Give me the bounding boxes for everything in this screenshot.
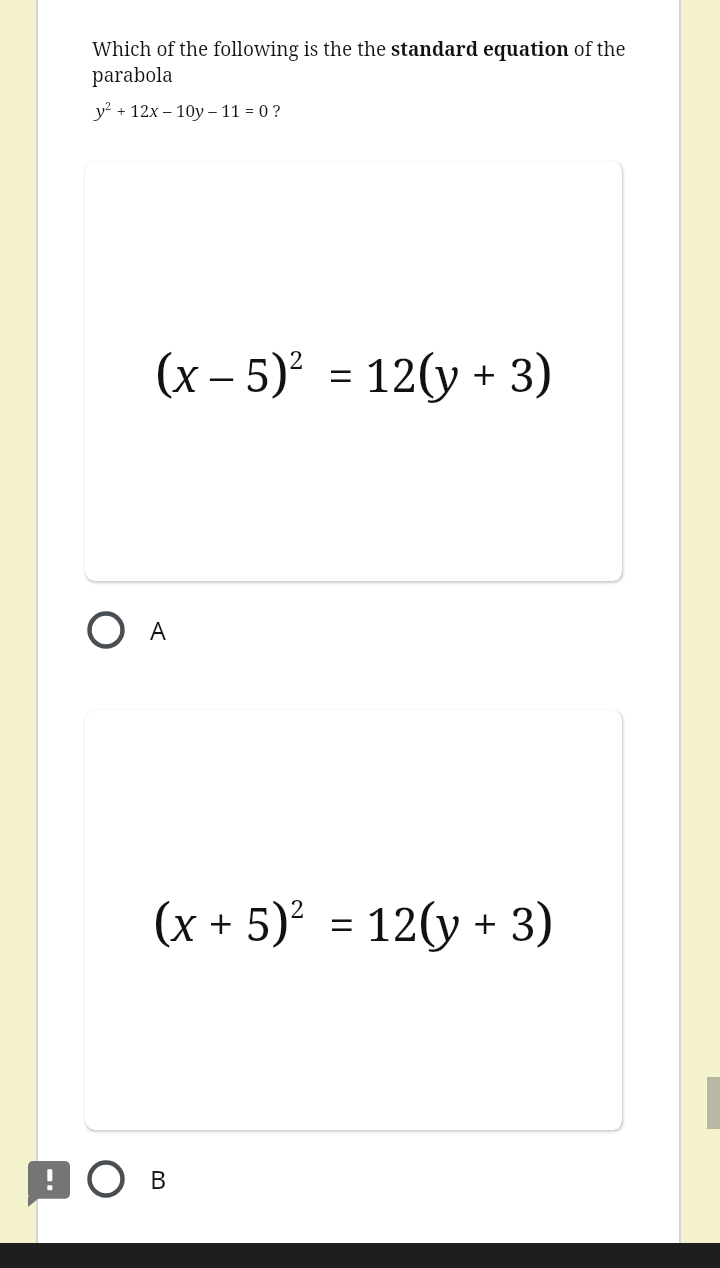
staticText: 2 xyxy=(105,98,112,113)
staticText: B xyxy=(150,1162,167,1196)
staticText: (x + 5) xyxy=(153,885,290,956)
button[interactable]: Select option A xyxy=(38,585,681,675)
button[interactable]: (x – 5) xyxy=(85,161,622,581)
other: Select option B xyxy=(87,1160,125,1198)
staticText: 2 xyxy=(289,341,304,376)
staticText: Which of the following is the the standa… xyxy=(92,36,661,88)
staticText: = 12(y + 3) xyxy=(305,885,554,956)
staticText: y xyxy=(96,99,105,122)
button[interactable]: Report a problem xyxy=(28,1161,70,1207)
button[interactable]: Select option B xyxy=(38,1134,681,1224)
other: Select option A xyxy=(87,611,125,649)
staticText: (x – 5) xyxy=(155,336,289,407)
staticText: 2 xyxy=(290,890,305,925)
staticText: + 12x – 10y – 11 = 0 ? xyxy=(112,99,281,122)
button[interactable]: (x + 5) xyxy=(85,710,622,1130)
staticText: = 12(y + 3) xyxy=(304,336,553,407)
staticText: A xyxy=(150,613,166,647)
